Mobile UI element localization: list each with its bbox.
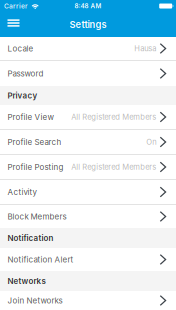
button[interactable]: Join Networks [0, 291, 176, 310]
button[interactable]: Password [0, 61, 176, 86]
button[interactable]: Profile Search [0, 130, 176, 155]
button[interactable]: Profile View [0, 105, 176, 130]
button[interactable]: Activity [0, 180, 176, 205]
staticText: Locale [7, 44, 33, 53]
staticText: Privacy [7, 91, 37, 100]
staticText: Carrier [4, 2, 28, 10]
staticText: Hausa [134, 44, 156, 53]
staticText: Settings [69, 19, 106, 30]
staticText: 8:48 AM [74, 2, 101, 10]
staticText: Notification Alert [7, 255, 73, 264]
staticText: Networks [7, 276, 45, 286]
staticText: All Registered Members [71, 112, 156, 122]
staticText: Join Networks [7, 296, 62, 305]
staticText: Block Members [7, 212, 66, 221]
staticText: Notification [7, 233, 53, 243]
staticText: Password [7, 69, 43, 78]
staticText: Profile Posting [7, 162, 63, 172]
staticText: All Registered Members [71, 162, 156, 172]
staticText: Profile View [7, 112, 54, 122]
button[interactable]: Locale [0, 37, 176, 61]
button[interactable]: Menu [0, 12, 26, 37]
button[interactable]: Notification Alert [0, 248, 176, 271]
button[interactable]: Block Members [0, 205, 176, 228]
staticText: On [146, 137, 156, 147]
staticText: Activity [7, 187, 36, 197]
staticText: Profile Search [7, 137, 61, 147]
button[interactable]: Profile Posting [0, 155, 176, 180]
